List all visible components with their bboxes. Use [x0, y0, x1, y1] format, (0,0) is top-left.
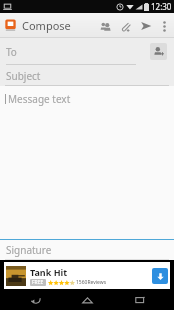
- button[interactable]: To: [6, 38, 138, 65]
- staticText: Signature: [6, 243, 52, 257]
- button[interactable]: Advertisement: Tank Hit: [4, 262, 170, 289]
- staticText: Subject: [6, 69, 41, 83]
- button[interactable]: Attach file: [115, 16, 135, 36]
- button[interactable]: Signature: [0, 240, 174, 260]
- button[interactable]: App icon, navigate up: [3, 18, 18, 33]
- button[interactable]: Back: [17, 290, 53, 310]
- button[interactable]: Recent apps: [122, 290, 158, 310]
- staticText: 1560Reviews: [76, 279, 107, 286]
- button[interactable]: Install: [152, 268, 168, 284]
- staticText: Message text: [8, 92, 71, 106]
- button[interactable]: More options: [157, 15, 171, 37]
- button[interactable]: Send: [135, 15, 157, 37]
- staticText: Compose: [22, 18, 71, 33]
- staticText: 12:30: [151, 1, 172, 12]
- staticText: Tank Hit: [30, 266, 68, 278]
- button[interactable]: Home: [69, 290, 105, 310]
- button[interactable]: Choose contact: [150, 43, 167, 60]
- button[interactable]: Message text: [0, 86, 174, 240]
- button[interactable]: Add people: [95, 16, 115, 36]
- button[interactable]: Subject: [0, 65, 174, 86]
- staticText: To: [6, 45, 17, 59]
- staticText: FREE: [32, 279, 44, 286]
